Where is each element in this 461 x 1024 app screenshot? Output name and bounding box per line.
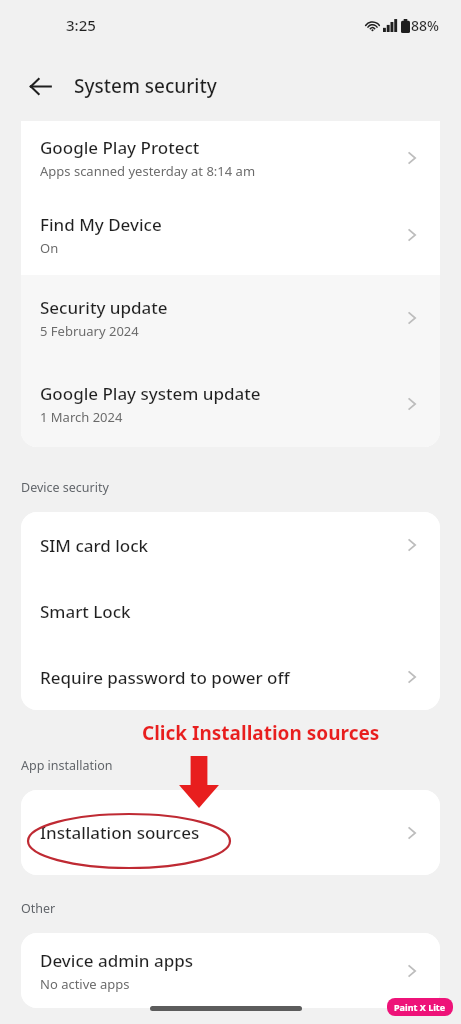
button[interactable]: Installation sources	[21, 790, 440, 875]
staticText: System security	[74, 73, 217, 99]
staticText: Device security	[21, 479, 109, 496]
button[interactable]: SIM card lock	[21, 512, 440, 578]
button[interactable]: Back	[18, 64, 62, 108]
staticText: Apps scanned yesterday at 8:14 am	[40, 162, 256, 180]
staticText: Require password to power off	[40, 666, 290, 689]
staticText: App installation	[21, 757, 113, 774]
button[interactable]: Smart Lock	[21, 578, 440, 644]
button[interactable]: Security update	[21, 275, 440, 361]
staticText: Installation sources	[40, 821, 200, 844]
staticText: Other	[21, 900, 56, 917]
staticText: SIM card lock	[40, 534, 149, 557]
staticText: Google Play Protect	[40, 136, 200, 159]
staticText: Smart Lock	[40, 600, 131, 623]
staticText: Device admin apps	[40, 949, 194, 972]
staticText: 88%	[411, 16, 439, 35]
staticText: Click Installation sources	[142, 720, 380, 746]
button[interactable]: Google Play system update	[21, 361, 440, 447]
staticText: 1 March 2024	[40, 408, 123, 426]
staticText: Paint X Lite	[394, 1001, 446, 1013]
button[interactable]: Require password to power off	[21, 644, 440, 710]
staticText: 5 February 2024	[40, 322, 139, 340]
staticText: 3:25	[66, 15, 96, 35]
staticText: Find My Device	[40, 213, 162, 236]
staticText: Google Play system update	[40, 382, 261, 405]
staticText: On	[40, 239, 59, 257]
button[interactable]: Google Play Protect	[21, 121, 440, 194]
staticText: Security update	[40, 296, 168, 319]
button[interactable]: Device admin apps	[21, 933, 440, 1008]
staticText: No active apps	[40, 975, 130, 993]
button[interactable]: Find My Device	[21, 194, 440, 275]
